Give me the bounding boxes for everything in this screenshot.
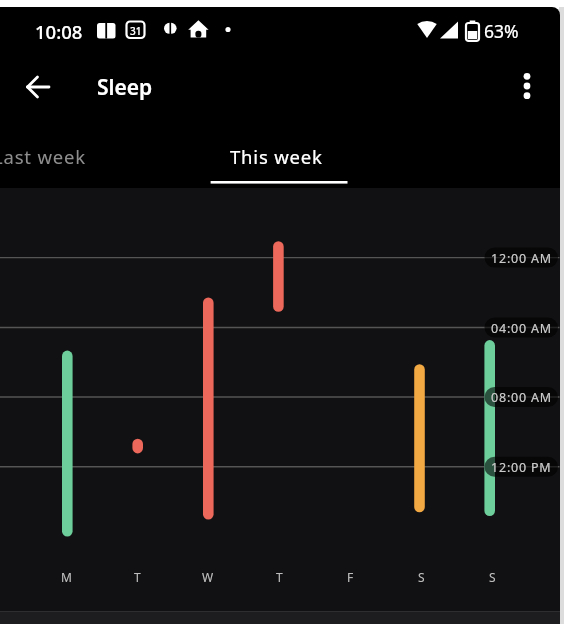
staticText: Sleep bbox=[97, 73, 153, 101]
staticText: 12:00 AM bbox=[491, 250, 552, 267]
button[interactable]: This week bbox=[208, 143, 345, 169]
staticText: M bbox=[61, 569, 72, 585]
staticText: 10:08 bbox=[35, 19, 83, 42]
staticText: Last week bbox=[0, 144, 86, 169]
button[interactable] bbox=[20, 70, 56, 104]
staticText: 04:00 AM bbox=[491, 320, 552, 337]
staticText: 12:00 PM bbox=[491, 459, 552, 476]
staticText: W bbox=[202, 569, 214, 585]
button[interactable] bbox=[509, 68, 545, 104]
staticText: T bbox=[276, 569, 283, 585]
staticText: This week bbox=[230, 144, 323, 169]
staticText: 08:00 AM bbox=[491, 389, 552, 406]
button[interactable]: Last week bbox=[0, 143, 99, 169]
staticText: 31 bbox=[130, 24, 142, 38]
staticText: 63% bbox=[484, 19, 519, 42]
staticText: F bbox=[347, 569, 354, 585]
staticText: T bbox=[134, 569, 141, 585]
staticText: S bbox=[418, 569, 425, 585]
staticText: S bbox=[489, 569, 496, 585]
